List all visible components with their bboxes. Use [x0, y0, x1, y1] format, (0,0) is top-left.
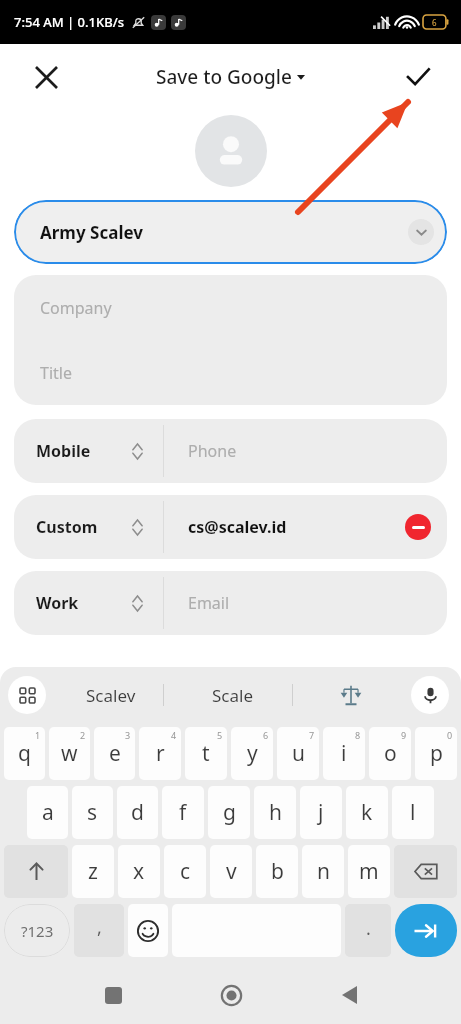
button[interactable]: .	[345, 904, 391, 957]
button[interactable]: s	[72, 786, 113, 839]
staticText: Save to Google	[156, 64, 292, 90]
button[interactable]: ,	[74, 904, 124, 957]
button[interactable]: Remove	[405, 514, 431, 540]
staticText: 4	[171, 729, 177, 741]
staticText: Email	[188, 592, 230, 614]
staticText: 8	[355, 729, 361, 741]
button[interactable]: cs@scalev.id	[164, 495, 447, 559]
staticText: a	[42, 798, 54, 827]
staticText: Scale	[212, 684, 254, 707]
staticText: b	[271, 857, 284, 886]
button[interactable]: a	[27, 786, 68, 839]
button[interactable]: e	[94, 727, 135, 780]
button[interactable]: k	[346, 786, 388, 839]
staticText: 0	[447, 729, 453, 741]
staticText: d	[131, 798, 144, 827]
staticText: y	[247, 739, 258, 768]
button[interactable]: x	[118, 845, 160, 898]
staticText: f	[179, 798, 187, 827]
button[interactable]: Home	[207, 971, 255, 1019]
staticText: 7:54 AM | 0.1KB/s	[14, 13, 125, 31]
button[interactable]: Backspace	[394, 845, 457, 898]
staticText: g	[223, 798, 236, 827]
button[interactable]: u	[277, 727, 319, 780]
button[interactable]: c	[164, 845, 206, 898]
staticText: l	[410, 798, 416, 827]
button[interactable]: v	[210, 845, 252, 898]
staticText: u	[292, 739, 305, 768]
staticText: x	[133, 857, 145, 886]
staticText: .	[366, 916, 371, 941]
staticText: n	[317, 857, 330, 886]
button[interactable]: Custom	[14, 495, 163, 559]
staticText: Mobile	[36, 440, 91, 462]
button[interactable]: Mobile	[14, 419, 447, 483]
button[interactable]: Shift	[4, 845, 68, 898]
button[interactable]: ?123	[4, 904, 70, 957]
staticText: s	[87, 798, 98, 827]
button[interactable]: Save to Google	[156, 64, 305, 90]
button[interactable]: q	[4, 727, 45, 780]
button[interactable]: Company	[14, 275, 447, 340]
button[interactable]: Army Scalev	[14, 200, 447, 264]
staticText: j	[318, 798, 324, 827]
staticText: 1	[35, 729, 41, 741]
staticText: i	[341, 739, 347, 768]
button[interactable]: p	[415, 727, 457, 780]
button[interactable]: Work	[14, 571, 447, 635]
button[interactable]: Title	[14, 340, 447, 405]
button[interactable]: z	[72, 845, 114, 898]
staticText: 3	[125, 729, 131, 741]
staticText: Phone	[188, 440, 237, 462]
button[interactable]: w	[49, 727, 90, 780]
button[interactable]: Back	[325, 971, 373, 1019]
button[interactable]: Scalev	[62, 667, 160, 723]
button[interactable]: b	[256, 845, 298, 898]
button[interactable]: Voice input	[411, 676, 449, 714]
button[interactable]: Expand name	[408, 219, 434, 245]
button[interactable]: Add photo	[195, 115, 267, 187]
button[interactable]: j	[300, 786, 342, 839]
button[interactable]: m	[348, 845, 390, 898]
button[interactable]: Email	[164, 571, 447, 635]
staticText: k	[361, 798, 373, 827]
staticText: Custom	[36, 516, 98, 538]
button[interactable]: Save	[397, 56, 439, 98]
button[interactable]: Phone	[164, 419, 447, 483]
staticText: p	[430, 739, 443, 768]
staticText: w	[61, 739, 78, 768]
staticText: c	[180, 857, 191, 886]
button[interactable]: Work	[14, 571, 163, 635]
button[interactable]: Scale	[178, 667, 288, 723]
button[interactable]: l	[392, 786, 434, 839]
button[interactable]: d	[117, 786, 158, 839]
staticText: Army Scalev	[40, 221, 143, 244]
button[interactable]: g	[208, 786, 250, 839]
button[interactable]: Next	[395, 904, 457, 957]
button[interactable]: Translate	[330, 674, 372, 716]
button[interactable]: n	[302, 845, 344, 898]
staticText: Scalev	[86, 684, 136, 707]
staticText: ,	[97, 915, 102, 940]
button[interactable]: f	[162, 786, 204, 839]
button[interactable]: o	[369, 727, 411, 780]
button[interactable]: Mobile	[14, 419, 163, 483]
staticText: cs@scalev.id	[188, 516, 287, 538]
button[interactable]: Custom	[14, 495, 447, 559]
button[interactable]: Close	[26, 57, 66, 97]
button[interactable]: Apps	[8, 676, 46, 714]
button[interactable]: t	[185, 727, 227, 780]
staticText: 6	[263, 729, 269, 741]
button[interactable]: Emoji	[128, 904, 168, 957]
staticText: o	[384, 739, 397, 768]
staticText: v	[226, 857, 237, 886]
button[interactable]: Recent apps	[89, 971, 137, 1019]
button[interactable]: h	[254, 786, 296, 839]
button[interactable]: i	[323, 727, 365, 780]
button[interactable]: r	[139, 727, 181, 780]
staticText: Title	[40, 362, 72, 384]
button[interactable]: y	[231, 727, 273, 780]
staticText: Company	[40, 297, 112, 319]
staticText: Work	[36, 592, 79, 614]
